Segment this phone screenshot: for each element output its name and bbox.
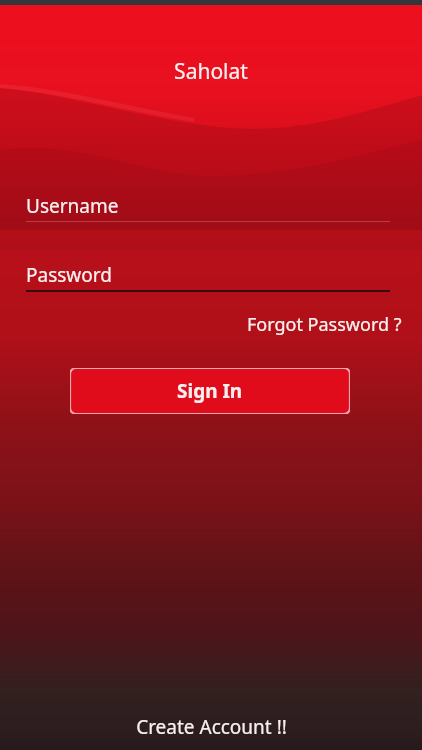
staticText: Saholat <box>0 57 422 86</box>
staticText: Forgot Password ? <box>247 312 402 336</box>
button[interactable]: Create Account !! <box>0 704 422 750</box>
button[interactable]: Sign In <box>70 368 350 414</box>
staticText: Username <box>26 193 119 219</box>
staticText: Create Account !! <box>136 714 287 740</box>
staticText: Sign In <box>177 378 243 404</box>
button[interactable]: Password <box>0 259 422 291</box>
button[interactable]: Username <box>0 190 422 222</box>
button[interactable]: Forgot Password ? <box>245 310 404 338</box>
staticText: Password <box>26 262 112 288</box>
